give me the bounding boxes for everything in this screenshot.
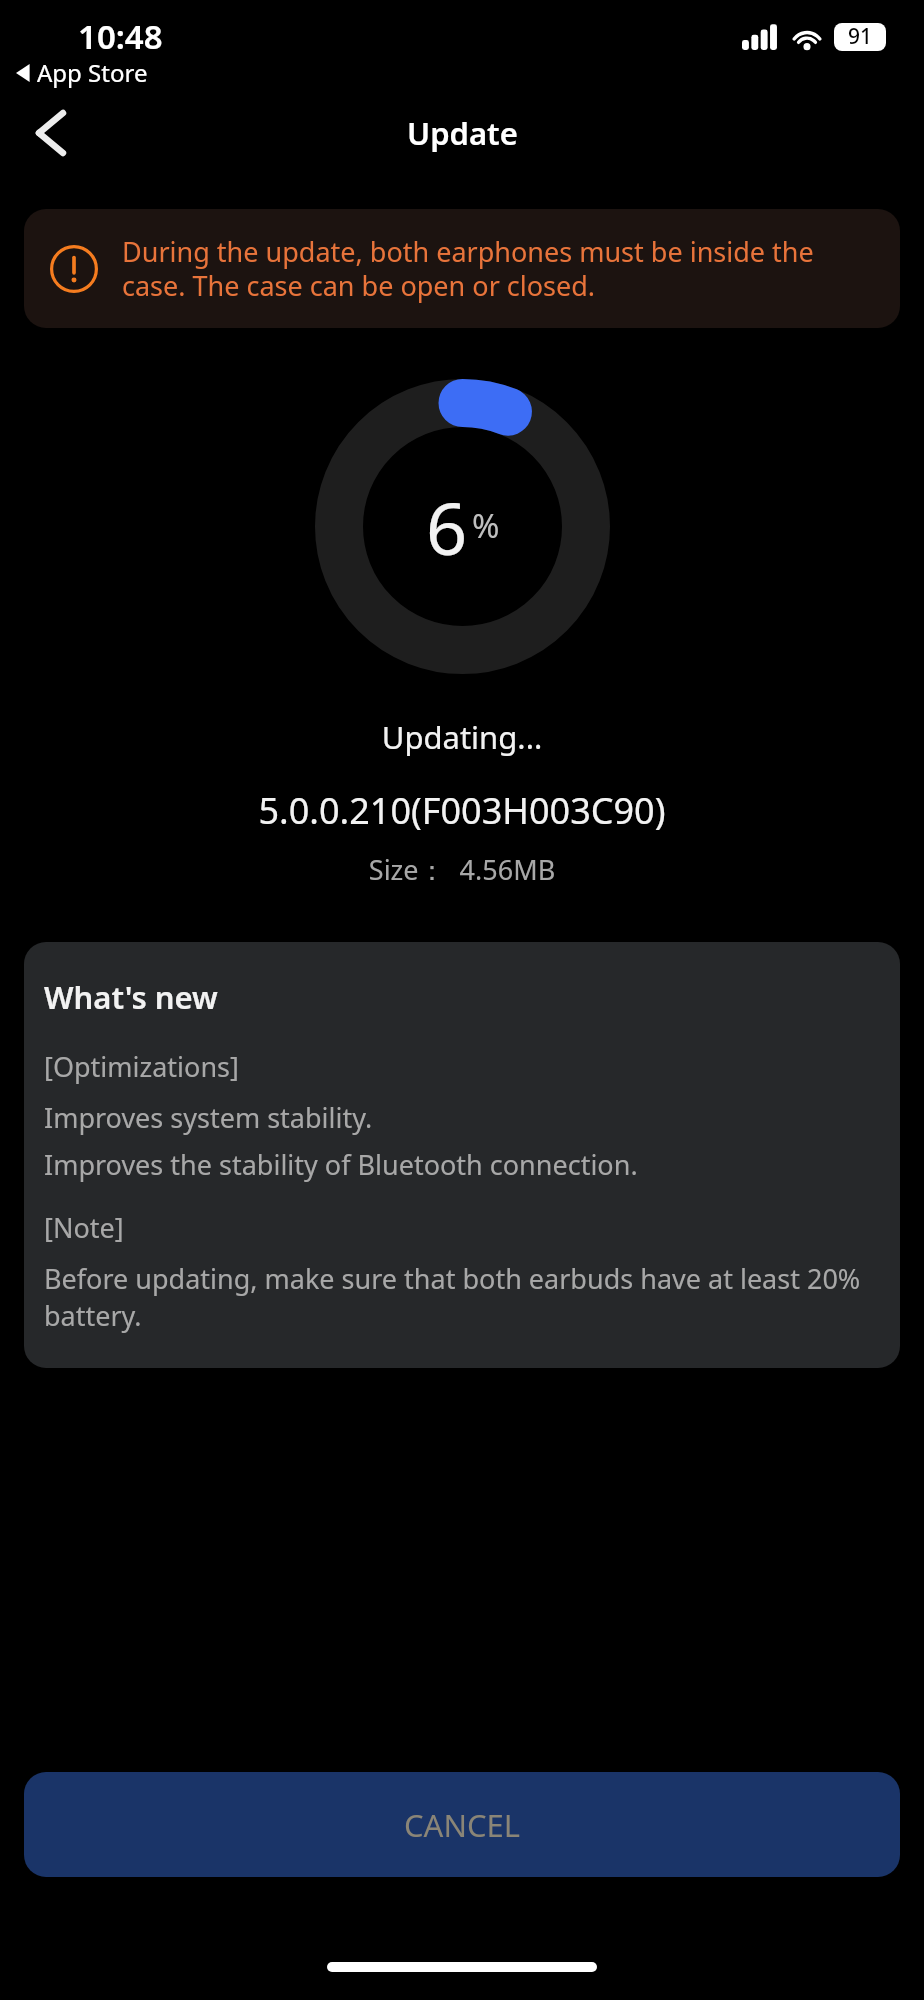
staticText: Improves the stability of Bluetooth conn… xyxy=(44,1146,638,1183)
staticText: 6 xyxy=(426,478,468,576)
staticText: % xyxy=(472,503,500,548)
staticText: During the update, both earphones must b… xyxy=(122,233,874,304)
staticText: Size： 4.56MB xyxy=(0,851,924,888)
staticText: App Store xyxy=(37,56,148,89)
staticText: [Optimizations] xyxy=(44,1048,239,1085)
staticText: What's new xyxy=(44,976,218,1018)
staticText: 5.0.0.210(F003H003C90) xyxy=(0,786,924,835)
staticText: Improves system stability. xyxy=(44,1099,373,1136)
staticText: 91 xyxy=(848,22,873,51)
staticText: Before updating, make sure that both ear… xyxy=(44,1260,880,1334)
staticText: Update xyxy=(407,112,518,154)
staticText: 10:48 xyxy=(78,14,163,59)
staticText: CANCEL xyxy=(404,1804,521,1846)
button[interactable]: What's new xyxy=(24,942,900,1368)
button[interactable]: CANCEL xyxy=(24,1772,900,1877)
staticText: Updating... xyxy=(0,716,924,758)
staticText: [Note] xyxy=(44,1209,124,1246)
button[interactable]: Back xyxy=(18,101,82,165)
